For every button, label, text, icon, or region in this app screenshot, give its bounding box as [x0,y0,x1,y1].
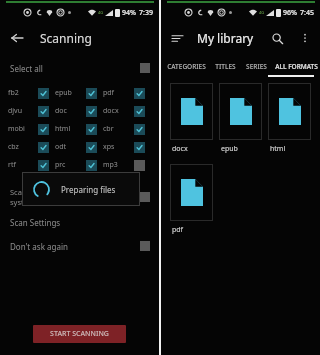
staticText: docx [103,106,119,116]
staticText: system folders [10,197,62,207]
button[interactable]: odt [55,138,103,156]
button[interactable]: TITLES [210,55,241,77]
staticText: 7:39 [139,8,153,18]
button[interactable]: Back [0,21,34,55]
button[interactable]: Don't ask again [0,234,159,258]
staticText: CATEGORIES [167,62,206,71]
button[interactable]: mp3 [103,156,151,174]
staticText: rtf [8,160,16,170]
staticText: Don't ask again [10,241,68,252]
staticText: ALL FORMATS [275,62,318,71]
staticText: TITLES [215,62,236,71]
button[interactable]: rtf [8,156,55,174]
staticText: 96% [283,8,297,18]
button[interactable]: Search [262,23,292,53]
button[interactable]: docx [103,102,151,120]
staticText: Scanning [40,30,92,46]
staticText: pdf [103,88,115,98]
staticText: Select all [10,63,43,74]
button[interactable]: pdf [170,164,213,239]
button[interactable]: Select all [0,55,159,81]
staticText: doc [55,106,67,116]
button[interactable]: epub [219,83,262,158]
button[interactable]: More options [292,25,318,51]
staticText: mobi [8,124,25,134]
button[interactable]: xps [103,138,151,156]
button[interactable]: fb2 [8,84,55,102]
staticText: 7:45 [300,8,314,18]
button[interactable]: CATEGORIES [163,55,210,77]
button[interactable]: ALL FORMATS [272,55,320,77]
button[interactable]: SERIES [241,55,272,77]
staticText: 4G [98,10,104,15]
staticText: cbr [103,124,114,134]
button[interactable]: Scan [0,184,159,210]
staticText: prc [55,160,66,170]
staticText: My library [197,30,254,46]
button[interactable]: docx [170,83,213,158]
staticText: START SCANNING [50,329,109,339]
staticText: Preparing files [61,184,116,195]
staticText: epub [221,144,238,154]
button[interactable]: epub [55,84,103,102]
staticText: Scan [10,187,27,197]
button[interactable]: START SCANNING [33,325,126,343]
button[interactable]: prc [55,156,103,174]
staticText: SERIES [246,62,267,71]
staticText: cbz [8,142,19,152]
button[interactable]: cbz [8,138,55,156]
staticText: html [270,144,286,154]
staticText: pdf [172,225,184,235]
staticText: xps [103,142,115,152]
button[interactable]: html [268,83,311,158]
staticText: Scan Settings [10,217,61,228]
staticText: mp3 [103,160,118,170]
staticText: html [55,124,71,134]
button[interactable]: djvu [8,102,55,120]
button[interactable]: cbr [103,120,151,138]
button[interactable]: Open navigation menu [161,22,193,54]
staticText: epub [55,88,72,98]
button[interactable]: html [55,120,103,138]
staticText: odt [55,142,67,152]
button[interactable]: pdf [103,84,151,102]
staticText: docx [172,144,188,154]
button[interactable]: Scan Settings [0,210,159,234]
staticText: djvu [8,106,22,116]
button[interactable]: doc [55,102,103,120]
staticText: 94% [122,8,136,18]
staticText: fb2 [8,88,19,98]
button[interactable]: mobi [8,120,55,138]
staticText: 4G [259,10,265,15]
